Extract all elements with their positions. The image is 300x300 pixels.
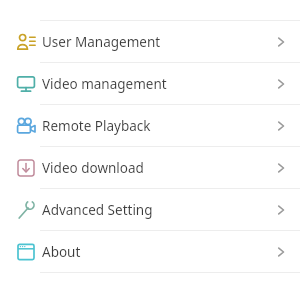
staticText: Video download bbox=[42, 159, 274, 177]
button[interactable]: User Management bbox=[0, 21, 300, 62]
staticText: User Management bbox=[42, 33, 274, 51]
staticText: Advanced Setting bbox=[42, 201, 274, 219]
button[interactable]: Remote Playback bbox=[0, 105, 300, 146]
staticText: Video management bbox=[42, 75, 274, 93]
button[interactable]: Video management bbox=[0, 63, 300, 104]
button[interactable]: Video download bbox=[0, 147, 300, 188]
button[interactable]: About bbox=[0, 231, 300, 272]
staticText: Remote Playback bbox=[42, 117, 274, 135]
staticText: About bbox=[42, 243, 274, 261]
button[interactable]: Advanced Setting bbox=[0, 189, 300, 230]
